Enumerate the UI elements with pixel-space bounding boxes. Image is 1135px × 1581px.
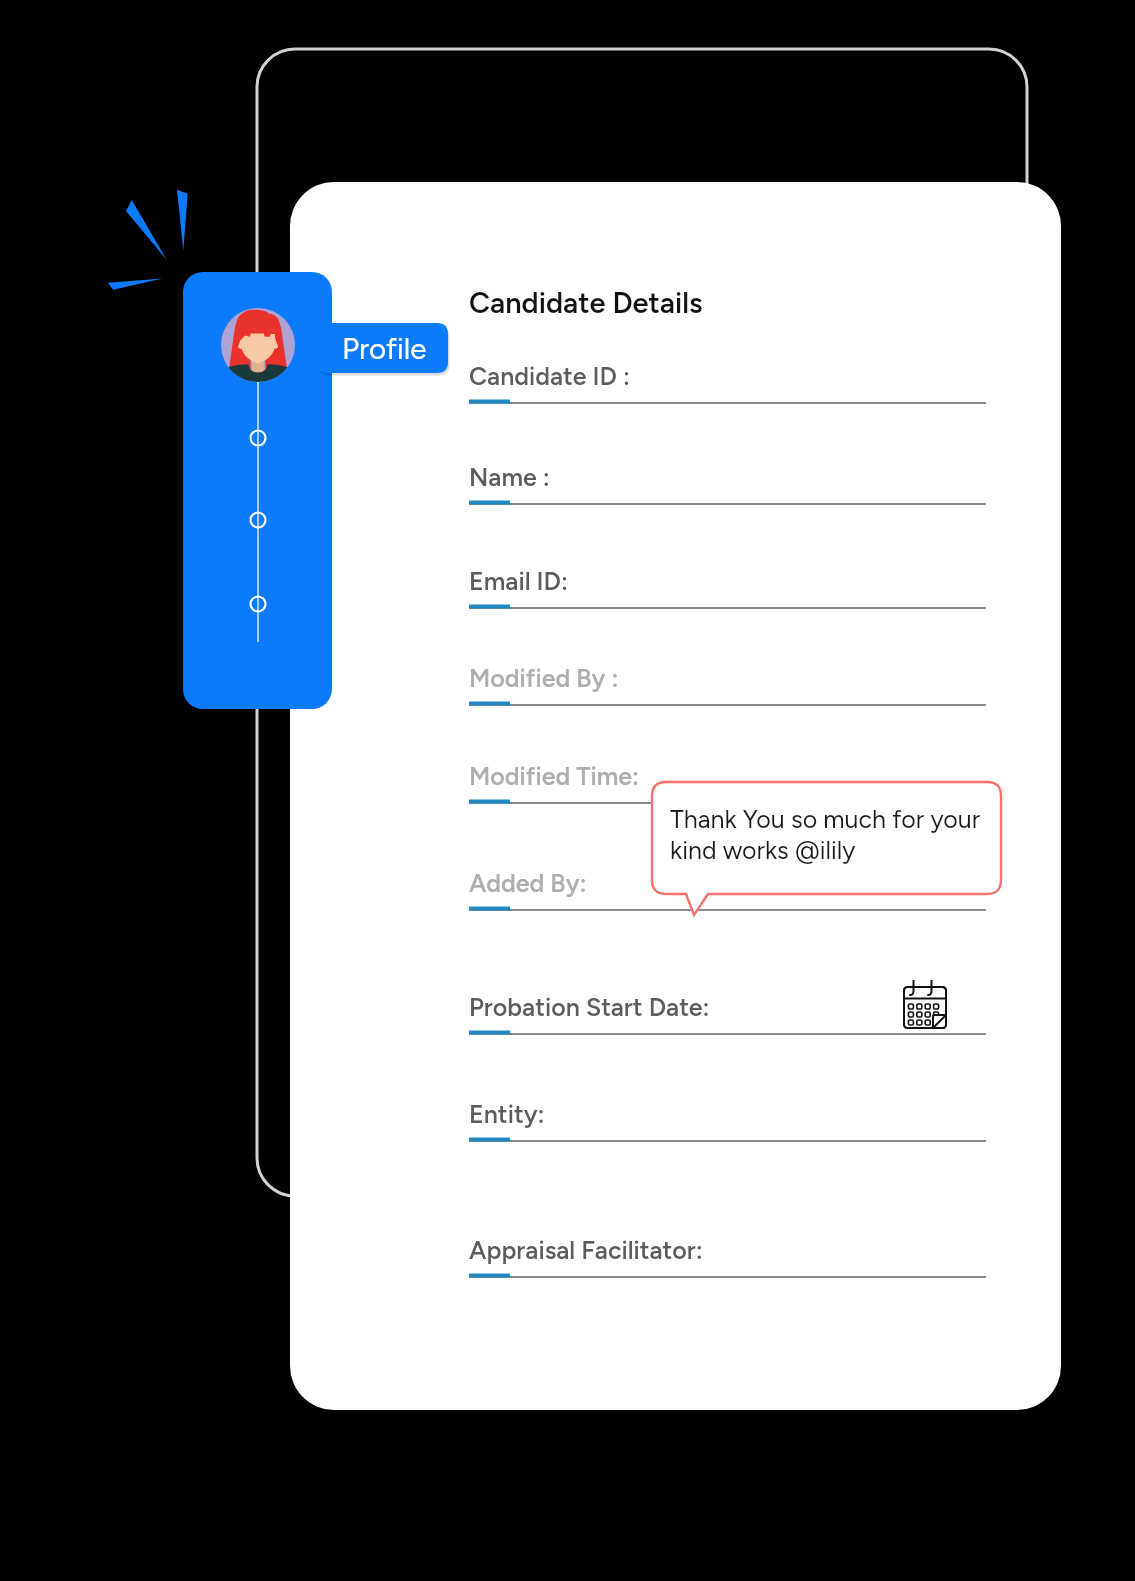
button[interactable]: [183, 272, 332, 709]
staticText: Added By:: [469, 868, 587, 898]
staticText: Modified By :: [469, 663, 619, 693]
staticText: Candidate Details: [469, 285, 703, 320]
staticText: Modified Time:: [469, 761, 640, 791]
staticText: Email ID:: [469, 566, 568, 596]
staticText: Appraisal Facilitator:: [469, 1235, 703, 1265]
staticText: Thank You so much for your kind works @i…: [670, 804, 981, 866]
staticText: Candidate ID :: [469, 361, 631, 391]
staticText: Entity:: [469, 1099, 545, 1129]
staticText: Probation Start Date:: [469, 992, 710, 1022]
button[interactable]: Pick probation start date: [898, 974, 952, 1034]
staticText: Name :: [469, 462, 550, 492]
button[interactable]: Profile: [300, 320, 452, 378]
button[interactable]: Thank You so much for your kind works @i…: [648, 778, 1008, 923]
staticText: Profile: [342, 331, 427, 366]
